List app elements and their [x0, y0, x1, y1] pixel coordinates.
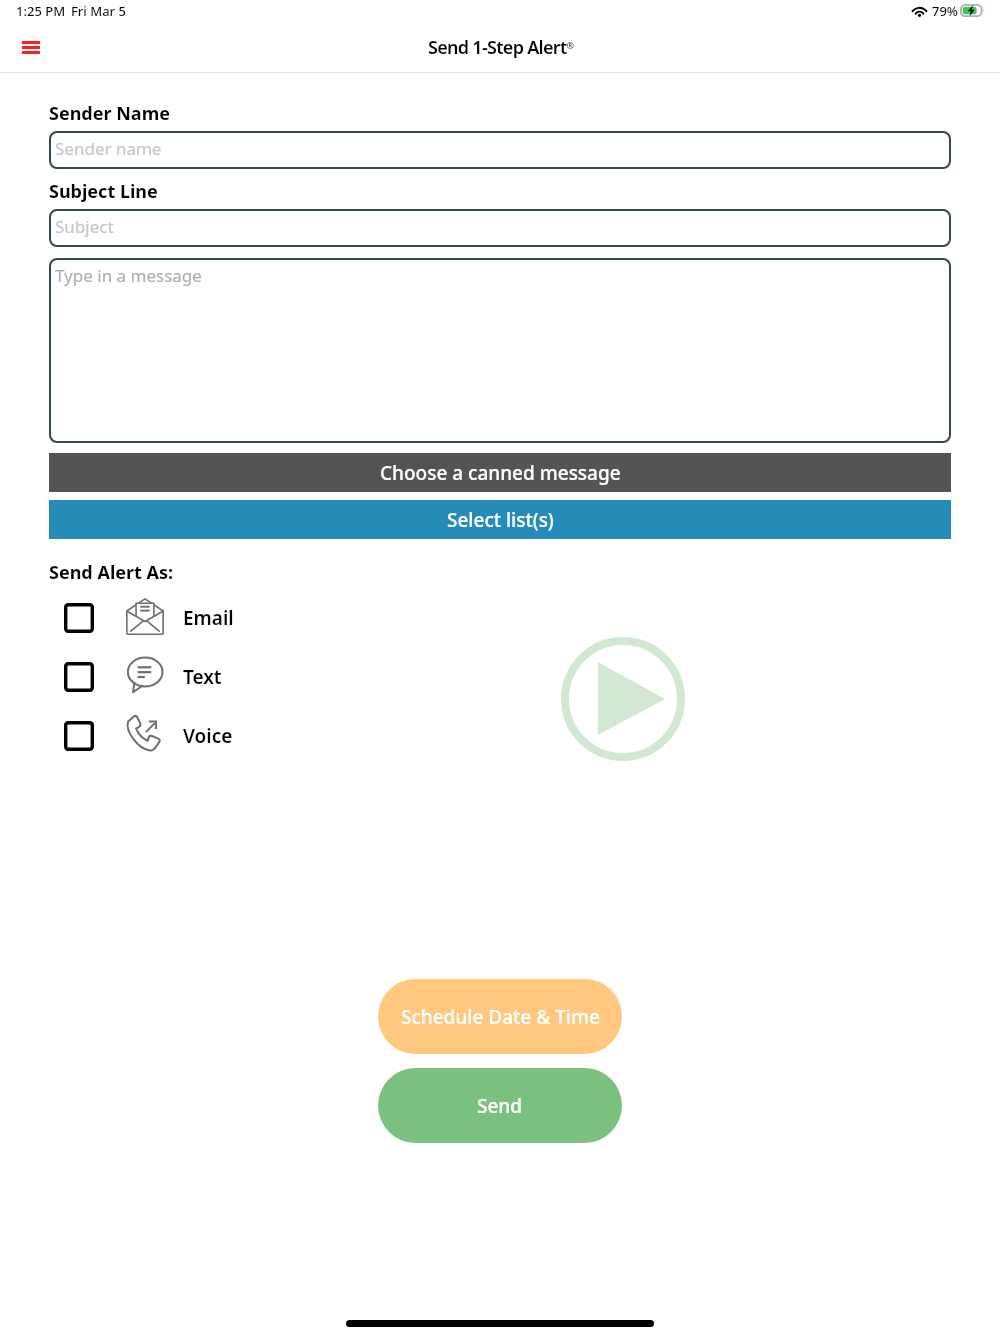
staticText: Subject Line	[49, 179, 158, 204]
staticText: Text	[183, 664, 222, 690]
staticText: Sender name	[55, 137, 162, 160]
button[interactable]: Type in a message	[49, 258, 951, 443]
button[interactable]: Schedule Date & Time	[378, 979, 622, 1054]
staticText: Sender Name	[49, 101, 170, 126]
staticText: Send Alert As:	[49, 560, 174, 585]
staticText: Type in a message	[55, 264, 202, 287]
button[interactable]: Choose a canned message	[49, 453, 951, 492]
staticText: Email	[183, 605, 234, 631]
button[interactable]: Voice	[64, 716, 233, 756]
staticText: Choose a canned message	[380, 460, 621, 486]
button[interactable]: Sender name	[49, 131, 951, 169]
staticText: Select list(s)	[447, 507, 554, 533]
button[interactable]: Email	[64, 598, 234, 638]
staticText: Send 1-Step Alert®	[428, 35, 574, 60]
staticText: Fri Mar 5	[71, 2, 126, 20]
staticText: Send	[477, 1093, 523, 1119]
button[interactable]: Play	[561, 637, 685, 761]
staticText: Schedule Date & Time	[401, 1004, 600, 1030]
button[interactable]: Menu	[1, 26, 62, 73]
button[interactable]: Subject	[49, 209, 951, 247]
staticText: 79%	[932, 2, 958, 20]
staticText: Voice	[183, 723, 233, 749]
button[interactable]: Send	[378, 1068, 622, 1143]
staticText: 1:25 PM	[16, 2, 66, 20]
button[interactable]: Text	[64, 657, 222, 697]
button[interactable]: Select list(s)	[49, 500, 951, 539]
staticText: Subject	[55, 215, 114, 238]
